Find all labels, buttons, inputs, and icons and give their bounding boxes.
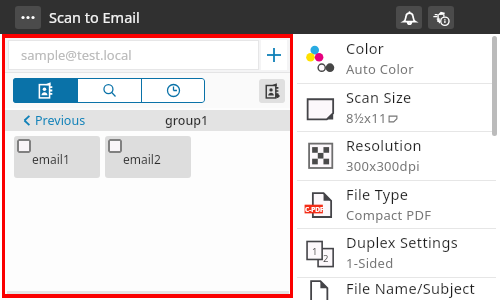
- staticText: Compact PDF: [346, 206, 432, 224]
- button[interactable]: Device information: [428, 6, 454, 29]
- button[interactable]: sample@test.local: [8, 40, 259, 70]
- button[interactable]: 2: [295, 229, 500, 277]
- staticText: sample@test.local: [21, 46, 132, 64]
- button[interactable]: Address book: [13, 78, 77, 103]
- button[interactable]: Resolution: [295, 132, 500, 180]
- staticText: C-PDF: [305, 205, 324, 214]
- staticText: Previous: [35, 112, 86, 129]
- staticText: 8½x11: [346, 109, 387, 127]
- staticText: 1-Sided: [346, 254, 394, 272]
- staticText: File Type: [346, 184, 409, 204]
- staticText: 2: [323, 252, 329, 265]
- staticText: Scan Size: [346, 87, 412, 107]
- staticText: Scan to Email: [49, 7, 140, 27]
- button[interactable]: Add contact: [259, 79, 285, 103]
- staticText: Color: [346, 38, 385, 58]
- button[interactable]: C-PDF: [295, 181, 500, 228]
- staticText: email1: [32, 151, 70, 167]
- button[interactable]: email2: [105, 136, 191, 178]
- staticText: group1: [165, 112, 209, 129]
- staticText: Duplex Settings: [346, 232, 458, 252]
- button[interactable]: Menu: [15, 6, 41, 29]
- staticText: Auto Color: [346, 60, 414, 78]
- button[interactable]: File Name/Subject: [295, 278, 500, 300]
- staticText: File Name/Subject: [346, 278, 476, 298]
- staticText: email2: [123, 151, 161, 167]
- button[interactable]: Scan Size: [295, 84, 500, 131]
- button[interactable]: Add recipient: [261, 40, 287, 70]
- staticText: 300x300dpi: [346, 157, 420, 175]
- button[interactable]: email1: [14, 136, 100, 178]
- button[interactable]: Notifications: [396, 6, 422, 29]
- button[interactable]: Search: [78, 78, 141, 103]
- button[interactable]: Color: [295, 34, 500, 83]
- button[interactable]: Previous: [23, 110, 86, 131]
- button[interactable]: History: [142, 78, 205, 103]
- staticText: Resolution: [346, 135, 422, 155]
- staticText: 1: [312, 245, 318, 258]
